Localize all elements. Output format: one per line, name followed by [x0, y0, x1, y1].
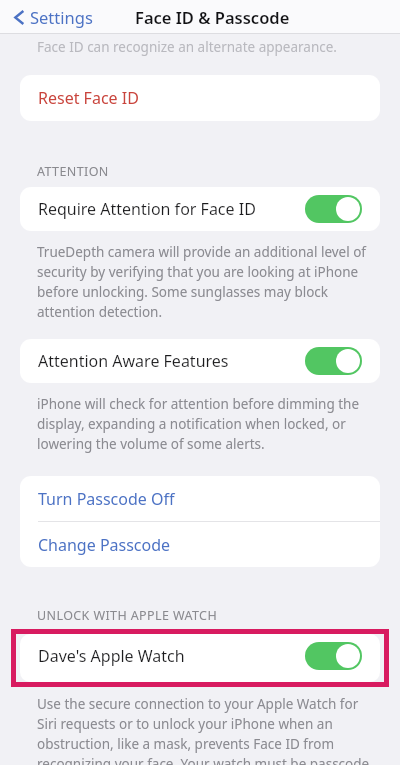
- staticText: iPhone will check for attention before d…: [37, 395, 370, 453]
- staticText: Reset Face ID: [38, 87, 139, 109]
- staticText: Require Attention for Face ID: [38, 198, 305, 220]
- staticText: ATTENTION: [37, 163, 109, 180]
- staticText: Attention Aware Features: [38, 350, 305, 372]
- staticText: Face ID & Passcode: [135, 6, 290, 28]
- button[interactable]: Require Attention for Face ID: [20, 187, 380, 231]
- staticText: UNLOCK WITH APPLE WATCH: [37, 607, 218, 624]
- staticText: Face ID can recognize an alternate appea…: [37, 38, 337, 56]
- button[interactable]: Attention Aware Features: [20, 339, 380, 383]
- button[interactable]: Toggle on: [305, 347, 362, 375]
- staticText: Turn Passcode Off: [38, 488, 175, 510]
- button[interactable]: Turn Passcode Off: [20, 476, 380, 521]
- staticText: Settings: [30, 6, 93, 28]
- staticText: Change Passcode: [38, 534, 171, 556]
- button[interactable]: Toggle on: [305, 195, 362, 223]
- staticText: Use the secure connection to your Apple …: [37, 695, 370, 765]
- button[interactable]: Settings: [10, 2, 97, 32]
- staticText: TrueDepth camera will provide an additio…: [37, 243, 370, 321]
- button[interactable]: Dave's Apple Watch: [20, 634, 380, 678]
- staticText: Dave's Apple Watch: [38, 645, 305, 667]
- button[interactable]: Change Passcode: [20, 522, 380, 567]
- button[interactable]: Toggle on: [305, 642, 362, 670]
- button[interactable]: Reset Face ID: [20, 75, 380, 121]
